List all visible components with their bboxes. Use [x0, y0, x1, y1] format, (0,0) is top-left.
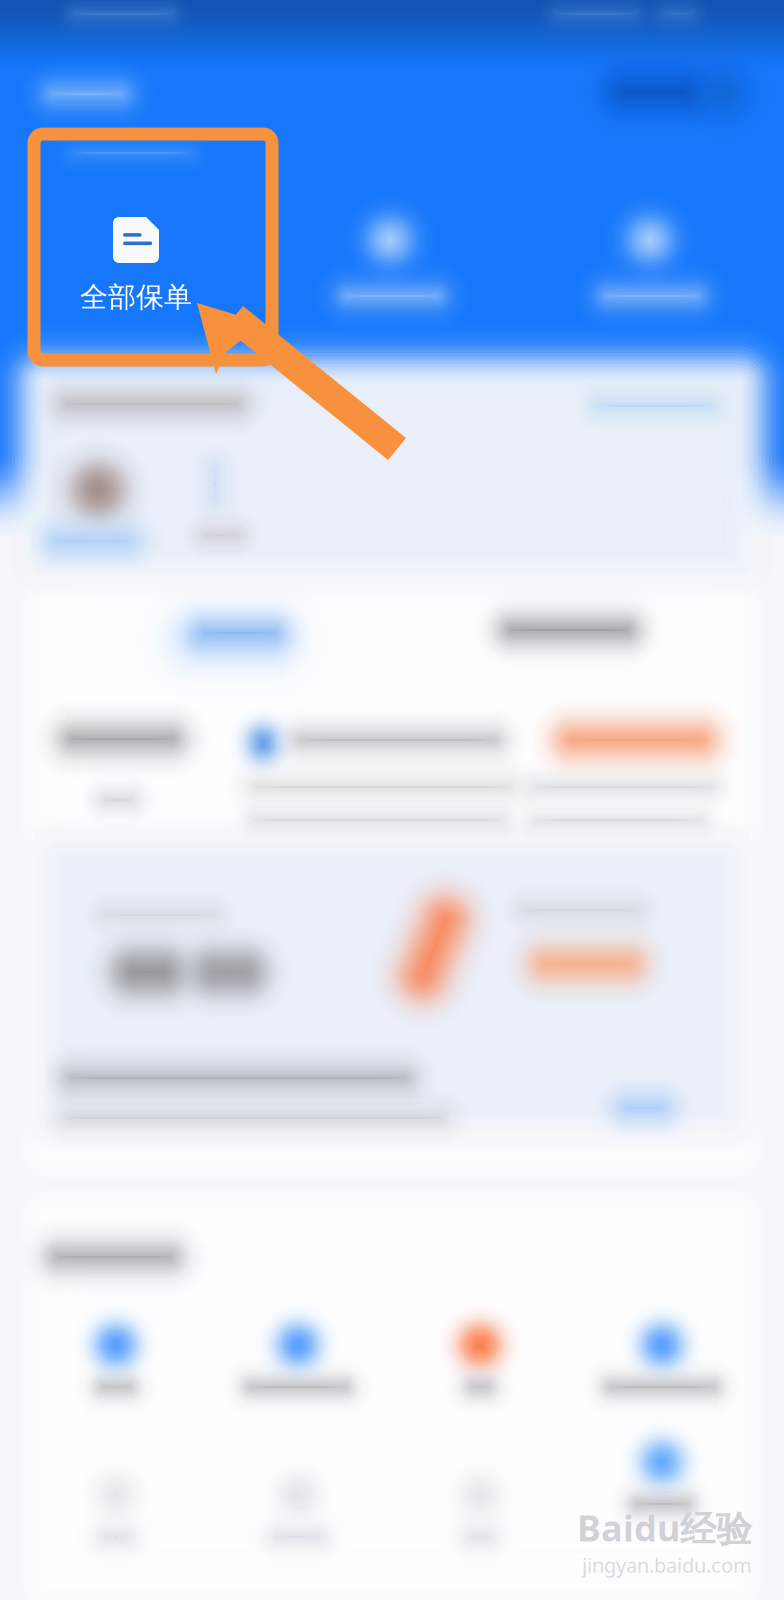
staticText: jingyan.baidu.com [582, 1552, 752, 1578]
staticText: Baidu经验 [577, 1504, 752, 1552]
staticText: 全部保单 [80, 280, 192, 314]
button[interactable]: 全部保单 [31, 217, 241, 341]
